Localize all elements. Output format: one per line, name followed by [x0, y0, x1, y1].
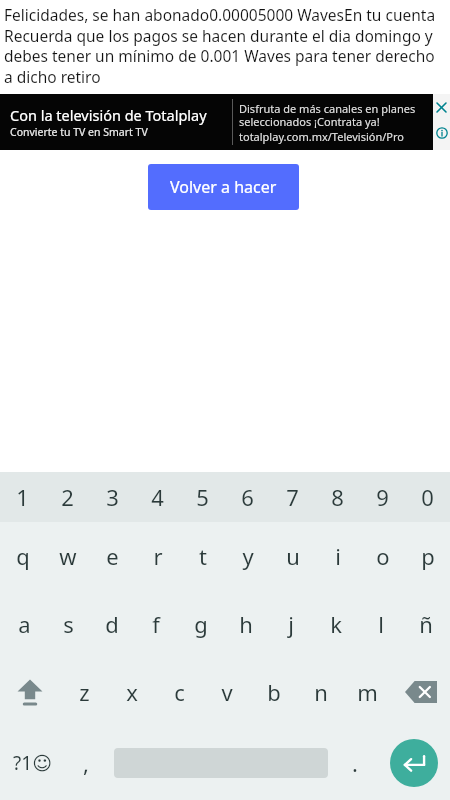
- button[interactable]: 8: [315, 472, 360, 522]
- staticText: Con la televisión de Totalplay: [10, 105, 207, 125]
- button[interactable]: l: [358, 590, 403, 658]
- button[interactable]: 6: [225, 472, 270, 522]
- staticText: v: [221, 677, 233, 707]
- staticText: o: [376, 541, 390, 571]
- staticText: Disfruta de más canales en planes selecc…: [239, 101, 433, 129]
- staticText: Convierte tu TV en Smart TV: [10, 125, 148, 139]
- button[interactable]: d: [90, 590, 134, 658]
- button[interactable]: x: [108, 658, 156, 726]
- staticText: 5: [196, 482, 209, 512]
- staticText: f: [152, 609, 160, 639]
- button[interactable]: a: [2, 590, 46, 658]
- button[interactable]: z: [60, 658, 108, 726]
- staticText: 6: [241, 482, 254, 512]
- staticText: b: [267, 677, 281, 707]
- button[interactable]: ñ: [403, 590, 448, 658]
- staticText: r: [153, 541, 163, 571]
- staticText: .: [352, 748, 358, 778]
- staticText: 4: [151, 482, 164, 512]
- button[interactable]: 1: [0, 472, 45, 522]
- staticText: a: [18, 609, 31, 639]
- button[interactable]: n: [297, 658, 344, 726]
- staticText: g: [194, 609, 208, 639]
- staticText: m: [357, 677, 378, 707]
- staticText: e: [106, 541, 119, 571]
- staticText: p: [421, 541, 435, 571]
- button[interactable]: 9: [360, 472, 405, 522]
- button[interactable]: 0: [405, 472, 450, 522]
- staticText: w: [59, 541, 77, 571]
- button[interactable]: .: [333, 726, 377, 800]
- staticText: Recuerda que los pagos se hacen durante …: [4, 25, 444, 88]
- staticText: t: [199, 541, 207, 571]
- button[interactable]: Ad info: [433, 120, 450, 146]
- button[interactable]: e: [90, 522, 135, 590]
- staticText: ?1☺: [13, 750, 52, 776]
- button[interactable]: 7: [270, 472, 315, 522]
- staticText: ,: [83, 748, 89, 778]
- button[interactable]: p: [405, 522, 450, 590]
- button[interactable]: t: [180, 522, 225, 590]
- button[interactable]: Con la televisión de Totalplay: [0, 94, 450, 150]
- button[interactable]: k: [313, 590, 358, 658]
- staticText: totalplay.com.mx/Televisión/Pro: [239, 129, 404, 144]
- staticText: 7: [286, 482, 299, 512]
- staticText: 2: [61, 482, 74, 512]
- staticText: 9: [376, 482, 389, 512]
- button[interactable]: j: [268, 590, 313, 658]
- button[interactable]: v: [203, 658, 250, 726]
- staticText: k: [330, 609, 342, 639]
- staticText: c: [174, 677, 185, 707]
- button[interactable]: Shift: [0, 658, 60, 726]
- button[interactable]: s: [46, 590, 90, 658]
- staticText: i: [335, 541, 341, 571]
- staticText: ñ: [419, 609, 433, 639]
- staticText: Volver a hacer: [170, 176, 277, 198]
- button[interactable]: 5: [180, 472, 225, 522]
- button[interactable]: Close ad: [433, 94, 450, 120]
- button[interactable]: m: [344, 658, 391, 726]
- button[interactable]: g: [178, 590, 223, 658]
- button[interactable]: u: [270, 522, 315, 590]
- staticText: l: [378, 609, 384, 639]
- button[interactable]: Backspace: [391, 658, 450, 726]
- button[interactable]: 4: [135, 472, 180, 522]
- staticText: 1: [16, 482, 29, 512]
- staticText: q: [16, 541, 30, 571]
- button[interactable]: q: [0, 522, 45, 590]
- button[interactable]: c: [156, 658, 203, 726]
- staticText: u: [286, 541, 300, 571]
- staticText: h: [239, 609, 253, 639]
- button[interactable]: Enter: [390, 739, 438, 787]
- button[interactable]: f: [134, 590, 178, 658]
- button[interactable]: h: [223, 590, 268, 658]
- staticText: 8: [331, 482, 344, 512]
- button[interactable]: b: [250, 658, 297, 726]
- staticText: Felicidades, se han abonado0.00005000 Wa…: [4, 4, 436, 25]
- staticText: s: [63, 609, 74, 639]
- button[interactable]: 3: [90, 472, 135, 522]
- staticText: 3: [106, 482, 119, 512]
- button[interactable]: ?1☺: [0, 726, 64, 800]
- staticText: x: [126, 677, 138, 707]
- button[interactable]: ,: [64, 726, 108, 800]
- staticText: n: [314, 677, 328, 707]
- button[interactable]: Volver a hacer: [148, 164, 299, 210]
- button[interactable]: r: [135, 522, 180, 590]
- staticText: j: [288, 609, 294, 639]
- button[interactable]: y: [225, 522, 270, 590]
- staticText: d: [105, 609, 119, 639]
- staticText: 0: [421, 482, 434, 512]
- staticText: z: [79, 677, 90, 707]
- button[interactable]: i: [315, 522, 360, 590]
- button[interactable]: 2: [45, 472, 90, 522]
- button[interactable]: w: [45, 522, 90, 590]
- button[interactable]: o: [360, 522, 405, 590]
- staticText: y: [242, 541, 254, 571]
